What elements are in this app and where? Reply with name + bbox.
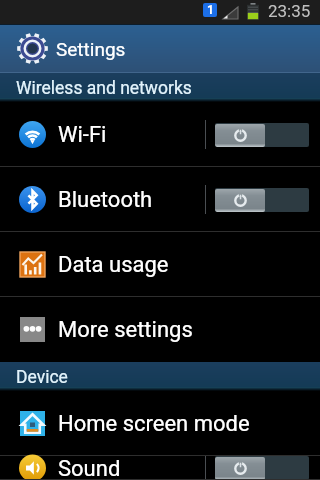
button[interactable]: Toggle <box>215 456 309 480</box>
staticText: Sound <box>58 456 205 480</box>
button[interactable]: Data usage <box>0 232 320 297</box>
staticText: Home screen mode <box>58 411 320 437</box>
staticText: Settings <box>56 38 126 60</box>
staticText: Data usage <box>58 252 320 278</box>
staticText: 23:35 <box>268 1 311 21</box>
staticText: Wi-Fi <box>58 122 205 148</box>
button[interactable]: Toggle <box>215 123 309 147</box>
other: Settings <box>17 33 48 64</box>
staticText: 1 <box>207 3 214 17</box>
button[interactable]: Toggle <box>215 188 309 212</box>
button[interactable]: Home screen mode <box>0 391 320 456</box>
button[interactable]: Settings <box>0 24 320 73</box>
other: 1 notification <box>203 3 217 17</box>
button[interactable]: More settings <box>0 297 320 362</box>
staticText: Bluetooth <box>58 187 205 213</box>
button[interactable]: Bluetooth <box>0 167 320 232</box>
staticText: Wireless and networks <box>16 78 192 99</box>
staticText: More settings <box>58 317 320 343</box>
button[interactable]: Wi-Fi <box>0 102 320 167</box>
button[interactable]: Sound <box>0 456 320 480</box>
staticText: Device <box>16 367 68 388</box>
